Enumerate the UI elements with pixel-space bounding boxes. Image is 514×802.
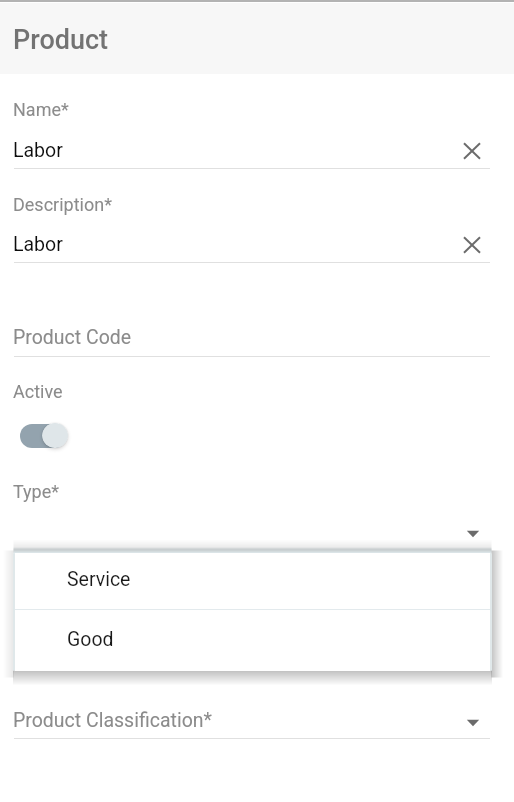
button[interactable]: Active [20,423,68,448]
staticText: Product Code [13,326,132,349]
staticText: Service [67,568,131,591]
staticText: Labor [13,233,63,256]
button[interactable]: Open Type menu [466,529,480,539]
button[interactable]: Service [15,553,490,609]
button[interactable]: Clear [456,229,488,261]
staticText: Name* [13,99,69,120]
staticText: Product Classification* [13,709,212,732]
staticText: Product [13,24,109,56]
staticText: Good [67,628,114,651]
staticText: Active [13,381,63,402]
staticText: Labor [13,139,63,162]
staticText: Type* [13,481,60,502]
button[interactable]: Open Product Classification menu [466,718,480,728]
button[interactable]: Good [15,610,490,671]
button[interactable]: Clear [456,135,488,167]
staticText: Description* [13,194,112,215]
